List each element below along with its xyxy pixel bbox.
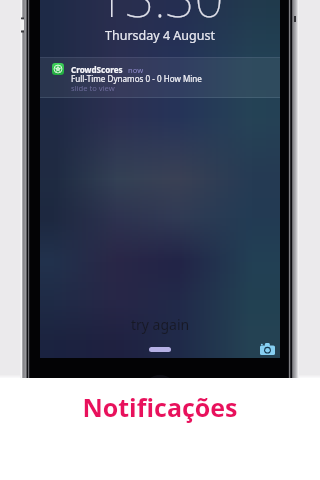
staticText: now xyxy=(128,65,144,75)
button[interactable]: Unlock xyxy=(149,347,171,352)
staticText: Thursday 4 August xyxy=(105,27,215,44)
staticText: 13:30 xyxy=(96,0,224,31)
staticText: try again xyxy=(131,315,190,334)
staticText: Notificações xyxy=(82,390,238,424)
staticText: slide to view xyxy=(71,83,115,93)
staticText: CrowdScores xyxy=(71,64,123,75)
staticText: Full-Time Dynamos 0 - 0 How Mine xyxy=(71,73,202,84)
button[interactable]: Camera xyxy=(259,340,276,357)
button[interactable]: CrowdScores xyxy=(40,57,280,98)
